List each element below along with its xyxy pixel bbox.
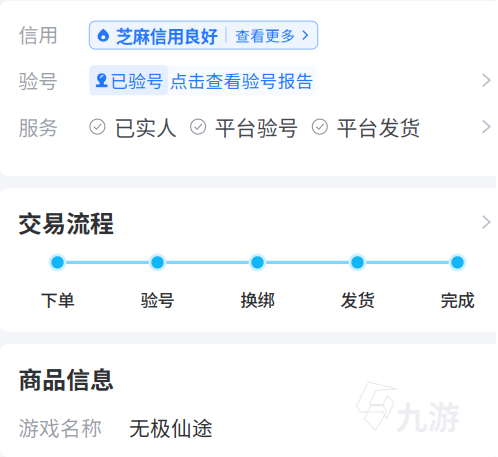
staticText: 九游 xyxy=(395,392,459,438)
staticText: 平台发货 xyxy=(336,111,420,142)
staticText: 点击查看验号报告 xyxy=(170,67,314,93)
button[interactable]: 交易流程 xyxy=(0,208,498,236)
staticText: 平台验号 xyxy=(215,111,299,142)
staticText: 已实人 xyxy=(114,111,177,142)
staticText: 服务 xyxy=(18,112,58,141)
staticText: 查看更多 xyxy=(235,24,295,46)
staticText: 验号 xyxy=(140,287,174,312)
staticText: 交易流程 xyxy=(18,205,114,239)
staticText: 已验号 xyxy=(110,67,164,93)
staticText: 换绑 xyxy=(240,287,274,312)
staticText: 无极仙途 xyxy=(129,412,213,442)
staticText: 验号 xyxy=(18,66,58,95)
button[interactable]: 芝麻信用良好 xyxy=(89,20,318,48)
staticText: 完成 xyxy=(440,287,474,312)
staticText: 发货 xyxy=(340,287,374,312)
staticText: 芝麻信用良好 xyxy=(115,23,217,48)
staticText: 下单 xyxy=(40,287,74,312)
button[interactable]: 已验号 xyxy=(89,65,316,95)
staticText: 信用 xyxy=(18,19,58,48)
staticText: 游戏名称 xyxy=(18,412,102,442)
staticText: 商品信息 xyxy=(18,361,114,396)
